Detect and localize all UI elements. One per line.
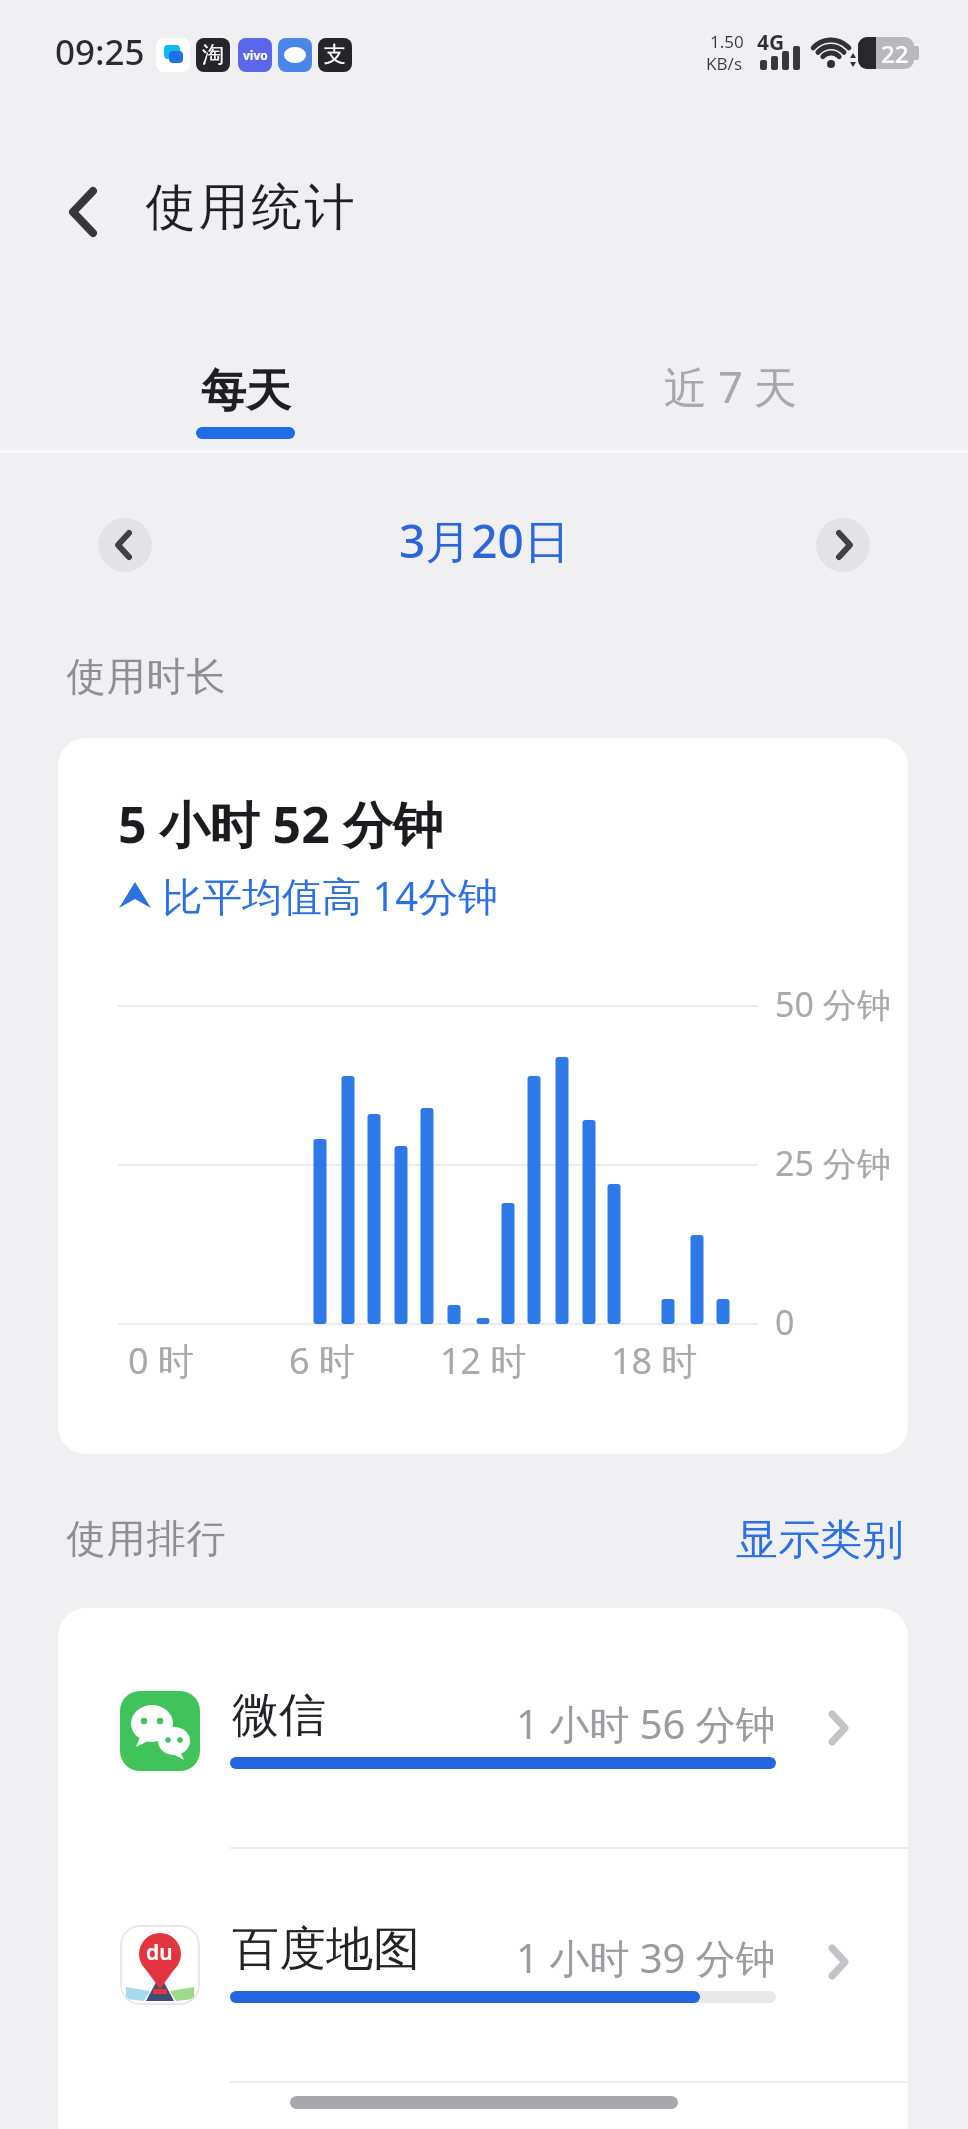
staticText: 1 小时 56 分钟 <box>516 1696 776 1750</box>
button[interactable]: 显示类别 <box>720 1505 920 1575</box>
staticText: 使用排行 <box>66 1514 226 1563</box>
staticText: 显示类别 <box>736 1514 904 1567</box>
staticText: 1.50 <box>710 30 744 53</box>
staticText: KB/s <box>706 52 743 75</box>
staticText: 支 <box>324 41 346 69</box>
button[interactable] <box>58 1873 908 2078</box>
button[interactable] <box>58 1638 908 1843</box>
button[interactable]: 每天 <box>150 363 340 468</box>
staticText: 淘 <box>202 41 224 69</box>
staticText: 50 分钟 <box>775 981 891 1027</box>
staticText: 3月20日 <box>399 509 570 572</box>
staticText: 12 时 <box>440 1336 527 1385</box>
button[interactable] <box>816 518 870 572</box>
staticText: 4G <box>757 28 785 57</box>
staticText: 1 小时 39 分钟 <box>516 1930 776 1984</box>
staticText: 每天 <box>201 363 291 420</box>
staticText: 5 小时 52 分钟 <box>118 790 443 858</box>
staticText: 0 <box>775 1299 795 1345</box>
button[interactable]: 近 7 天 <box>630 357 830 462</box>
button[interactable] <box>56 182 112 242</box>
staticText: du <box>146 1938 173 1967</box>
staticText: 近 7 天 <box>664 357 797 416</box>
staticText: 6 时 <box>289 1336 355 1385</box>
staticText: vivo <box>243 47 268 63</box>
staticText: 22 <box>881 37 909 69</box>
staticText: 25 分钟 <box>775 1140 891 1186</box>
staticText: 使用时长 <box>66 652 226 701</box>
staticText: 使用统计 <box>144 176 356 239</box>
staticText: 比平均值高 14分钟 <box>162 868 499 923</box>
button[interactable] <box>98 518 152 572</box>
staticText: 0 时 <box>128 1336 194 1385</box>
staticText: 18 时 <box>611 1336 698 1385</box>
staticText: 百度地图 <box>232 1920 420 1979</box>
staticText: 09:25 <box>55 28 145 76</box>
staticText: 微信 <box>232 1686 326 1745</box>
button[interactable]: 3月20日 <box>334 500 634 580</box>
